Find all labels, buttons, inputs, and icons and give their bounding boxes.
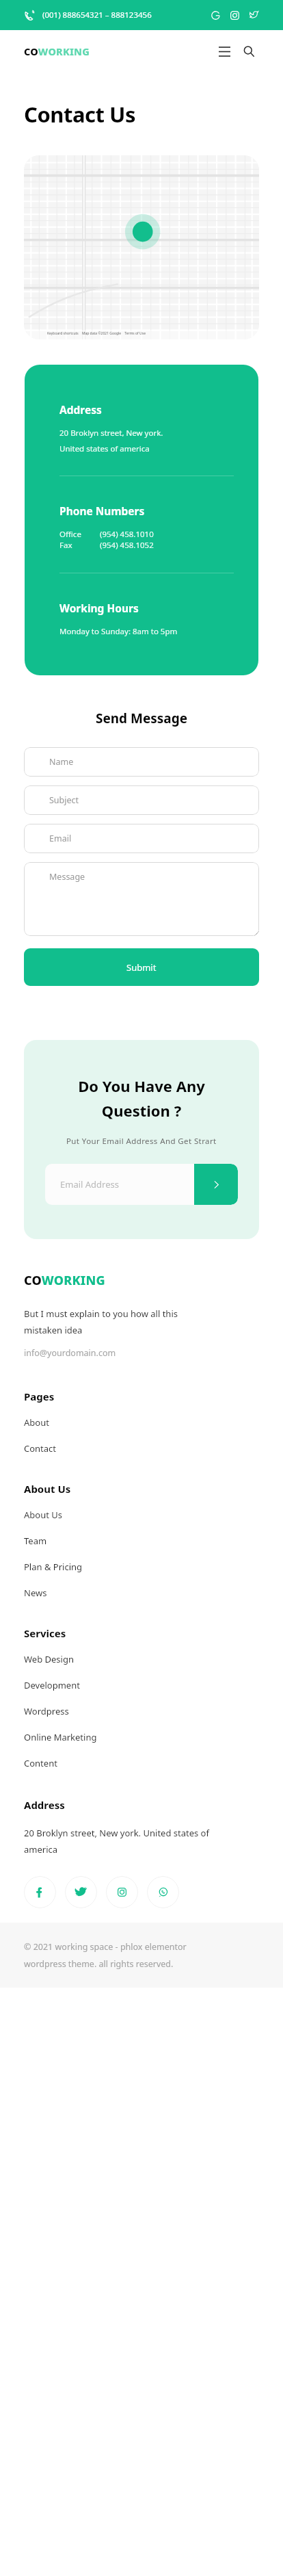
staticText: Address	[24, 1798, 65, 1812]
staticText: Message	[49, 871, 85, 883]
button[interactable]: Name	[24, 747, 259, 777]
button[interactable]: COWORKING	[24, 44, 90, 58]
staticText: Submit	[126, 961, 157, 974]
button[interactable]: About	[24, 1416, 259, 1429]
staticText: Subject	[49, 794, 79, 806]
button[interactable]: Message	[24, 862, 259, 936]
button[interactable]: Instagram	[106, 1876, 138, 1908]
button[interactable]: Subject	[24, 785, 259, 815]
staticText: Services	[24, 1626, 66, 1640]
button[interactable]: Content	[24, 1757, 259, 1769]
staticText: Content	[24, 1757, 57, 1769]
staticText: Email Address	[60, 1178, 119, 1191]
button[interactable]: News	[24, 1587, 259, 1599]
staticText: Name	[49, 756, 74, 768]
staticText: Fax	[59, 540, 72, 551]
button[interactable]: Menu	[214, 41, 234, 62]
staticText: Email	[49, 833, 72, 844]
button[interactable]: Address	[25, 365, 258, 675]
button[interactable]: Search	[239, 41, 259, 62]
staticText: About	[24, 1416, 49, 1429]
button[interactable]: Development	[24, 1679, 259, 1691]
staticText: (954) 458.1010	[100, 529, 154, 540]
button[interactable]: Google	[209, 9, 221, 21]
button[interactable]: Wordpress	[24, 1705, 259, 1717]
staticText: News	[24, 1587, 47, 1599]
staticText: About Us	[24, 1482, 71, 1496]
button[interactable]: info@yourdomain.com	[24, 1347, 116, 1359]
staticText: Put Your Email Address And Get Strart	[66, 1136, 217, 1147]
button[interactable]: Twitter	[247, 9, 260, 21]
staticText: About Us	[24, 1509, 63, 1521]
staticText: Wordpress	[24, 1705, 69, 1717]
button[interactable]: Plan & Pricing	[24, 1561, 259, 1573]
staticText: Team	[24, 1535, 47, 1547]
staticText: Phone Numbers	[59, 504, 145, 518]
staticText: 20 Broklyn street, New york. United stat…	[59, 428, 163, 454]
button[interactable]: WhatsApp	[147, 1876, 179, 1908]
staticText: Contact Us	[24, 100, 135, 129]
button[interactable]: About Us	[24, 1509, 259, 1521]
other: Phone	[23, 10, 35, 21]
button[interactable]: Submit	[24, 948, 259, 986]
staticText: But I must explain to you how all this m…	[24, 1307, 178, 1336]
button[interactable]: Team	[24, 1535, 259, 1547]
staticText: Web Design	[24, 1653, 74, 1665]
staticText: Monday to Sunday: 8am to 5pm	[59, 626, 178, 637]
button[interactable]: Email Address	[45, 1164, 194, 1205]
button[interactable]: Web Design	[24, 1653, 259, 1665]
staticText: Send Message	[0, 710, 283, 727]
staticText: Development	[24, 1679, 80, 1691]
button[interactable]: Online Marketing	[24, 1731, 259, 1743]
staticText: © 2021 working space - phlox elementor w…	[24, 1941, 187, 1969]
staticText: Keyboard shortcuts Map data ©2021 Google…	[47, 331, 146, 336]
staticText: Plan & Pricing	[24, 1561, 83, 1573]
staticText: Do You Have Any Question ?	[78, 1076, 205, 1121]
button[interactable]: Subscribe	[194, 1164, 238, 1205]
staticText: (001) 888654321 – 888123456	[42, 10, 152, 21]
staticText: (954) 458.1052	[100, 540, 154, 551]
button[interactable]: Twitter	[65, 1876, 97, 1908]
staticText: Address	[59, 402, 102, 417]
staticText: Pages	[24, 1390, 55, 1403]
button[interactable]: Email	[24, 824, 259, 853]
button[interactable]: Instagram	[228, 9, 241, 21]
button[interactable]: COWORKING	[24, 1272, 105, 1289]
button[interactable]: Contact	[24, 1442, 259, 1455]
staticText: Contact	[24, 1442, 57, 1455]
staticText: Working Hours	[59, 601, 139, 615]
button[interactable]: Facebook	[24, 1876, 56, 1908]
button[interactable]: Map	[24, 155, 259, 339]
staticText: Online Marketing	[24, 1731, 97, 1743]
staticText: Office	[59, 529, 81, 540]
staticText: 20 Broklyn street, New york. United stat…	[24, 1827, 209, 1856]
